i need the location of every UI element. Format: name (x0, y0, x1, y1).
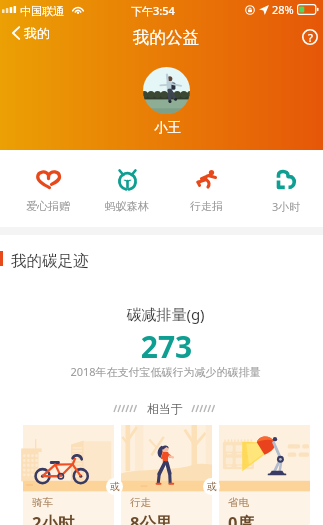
button[interactable]: 行走 (121, 425, 212, 525)
staticText: 行走捐 (190, 199, 223, 213)
staticText: 小王 (154, 119, 181, 136)
staticText: ? (308, 30, 313, 45)
button[interactable]: 蚂蚁森林 (93, 169, 161, 213)
staticText: 3小时 (272, 199, 301, 214)
staticText: 骑车 (32, 496, 53, 509)
staticText: 2小时 (32, 511, 75, 525)
staticText: 0度 (228, 511, 254, 525)
staticText: 省电 (228, 496, 249, 509)
staticText: 28% (272, 2, 294, 17)
staticText: 我的 (24, 25, 50, 41)
staticText: 2018年在支付宝低碳行为减少的碳排量 (15, 364, 312, 379)
button[interactable]: 爱心捐赠 (14, 169, 82, 213)
button[interactable]: 行走捐 (172, 169, 240, 213)
staticText: 中国联通 (20, 4, 64, 18)
staticText: 行走 (130, 496, 151, 509)
staticText: 273 (16, 326, 312, 367)
button[interactable]: 3小时 (252, 169, 320, 214)
staticText: 或 (110, 480, 120, 493)
staticText: 下午3:54 (131, 3, 175, 18)
staticText: 8公里 (130, 511, 173, 525)
button[interactable]: Help (297, 24, 323, 50)
staticText: 碳减排量(g) (15, 304, 312, 324)
staticText: 我的碳足迹 (11, 251, 89, 271)
staticText: 或 (207, 480, 217, 493)
staticText: 相当于 (147, 401, 183, 416)
staticText: 蚂蚁森林 (105, 199, 149, 213)
button[interactable]: Avatar (143, 67, 190, 114)
staticText: 我的公益 (133, 27, 199, 48)
button[interactable]: 骑车 (23, 425, 114, 525)
button[interactable]: 省电 (219, 425, 310, 525)
button[interactable]: 我的 (8, 22, 54, 44)
staticText: 爱心捐赠 (26, 199, 70, 213)
